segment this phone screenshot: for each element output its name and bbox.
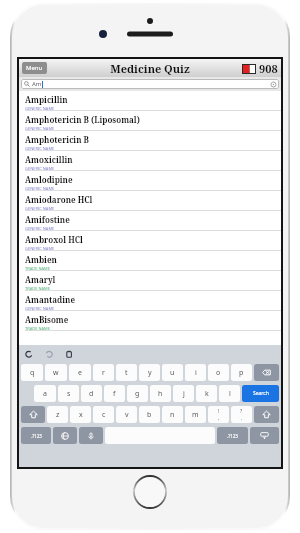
staticText: TRADE NAME [25,326,50,330]
staticText: Amoxicillin [25,154,73,165]
button[interactable]: o [208,364,229,381]
staticText: k [205,389,209,399]
button[interactable]: Undo [24,349,34,359]
staticText: .?123 [227,433,238,439]
button[interactable]: Menu [22,62,47,74]
button[interactable]: h [150,385,171,402]
button[interactable]: Numbers [21,427,51,444]
button[interactable]: x [70,406,91,423]
staticText: GENERIC NAME [25,126,55,130]
button[interactable]: f [104,385,125,402]
staticText: y [148,368,152,378]
staticText: Amaryl [25,274,56,285]
button[interactable]: Search [242,385,279,402]
button[interactable]: Amoxicillin [19,151,281,170]
button[interactable]: Shift right [254,406,279,423]
staticText: a [43,389,47,399]
staticText: o [216,368,221,378]
staticText: Ambien [25,254,57,265]
staticText: 908 [259,61,278,76]
staticText: l [229,389,231,399]
button[interactable]: Shift [21,406,45,423]
button[interactable]: l [219,385,240,402]
button[interactable]: i [185,364,206,381]
button[interactable]: ? [231,406,252,423]
button[interactable]: Score 908 [242,61,278,76]
button[interactable]: AmBisome [19,311,281,330]
button[interactable]: Backspace [254,364,279,381]
staticText: GENERIC NAME [25,246,55,250]
button[interactable]: q [21,364,43,381]
button[interactable]: Hide keyboard [250,427,279,444]
button[interactable]: z [47,406,68,423]
button[interactable]: Emoji [53,427,77,444]
button[interactable]: Ambien [19,251,281,270]
button[interactable]: Numbers right [217,427,248,444]
staticText: m [192,410,199,420]
staticText: ! [218,408,220,415]
button[interactable]: Redo [44,349,54,359]
button[interactable]: k [196,385,217,402]
staticText: Menu [26,64,43,72]
staticText: Medicine Quiz [110,61,190,76]
staticText: w [53,368,59,378]
staticText: TRADE NAME [25,286,50,290]
button[interactable]: Amphotericin B [19,131,281,150]
button[interactable]: Ampicillin [19,91,281,110]
staticText: GENERIC NAME [25,206,55,210]
button[interactable]: Voice input [79,427,103,444]
staticText: GENERIC NAME [25,166,55,170]
staticText: Amlodipine [25,174,73,185]
staticText: b [147,410,152,420]
staticText: r [102,368,105,378]
staticText: Am [32,80,42,88]
button[interactable]: d [81,385,102,402]
staticText: h [158,389,163,399]
button[interactable]: s [58,385,79,402]
button[interactable]: Amifostine [19,211,281,230]
button[interactable]: j [173,385,194,402]
button[interactable]: a [34,385,56,402]
staticText: GENERIC NAME [25,226,55,230]
button[interactable]: Search field [21,79,279,89]
staticText: z [56,410,60,420]
button[interactable]: Amphotericin B (Liposomal) [19,111,281,130]
button[interactable]: g [127,385,148,402]
button[interactable]: y [139,364,160,381]
staticText: Search [253,390,269,397]
staticText: ? [240,408,243,415]
staticText: e [78,368,82,378]
staticText: c [102,410,106,420]
staticText: GENERIC NAME [25,306,55,310]
button[interactable]: Amantadine [19,291,281,310]
staticText: i [195,368,197,378]
button[interactable]: Amaryl [19,271,281,290]
staticText: Amantadine [25,294,76,305]
button[interactable]: m [185,406,206,423]
button[interactable]: Ambroxol HCl [19,231,281,250]
staticText: GENERIC NAME [25,146,55,150]
button[interactable]: Amiodarone HCl [19,191,281,210]
button[interactable]: b [139,406,160,423]
button[interactable]: p [231,364,252,381]
button[interactable]: e [69,364,91,381]
button[interactable]: Amlodipine [19,171,281,190]
button[interactable]: u [162,364,183,381]
button[interactable]: n [162,406,183,423]
staticText: x [79,410,83,420]
button[interactable]: ! [208,406,229,423]
staticText: u [170,368,175,378]
button[interactable]: Paste [64,349,74,359]
staticText: g [135,389,140,399]
button[interactable]: c [93,406,114,423]
staticText: p [239,368,244,378]
button[interactable]: w [45,364,67,381]
button[interactable]: v [116,406,137,423]
button[interactable]: r [93,364,114,381]
staticText: v [125,410,129,420]
staticText: GENERIC NAME [25,186,55,190]
button[interactable]: t [116,364,137,381]
staticText: Ampicillin [25,94,68,105]
staticText: t [125,368,128,378]
